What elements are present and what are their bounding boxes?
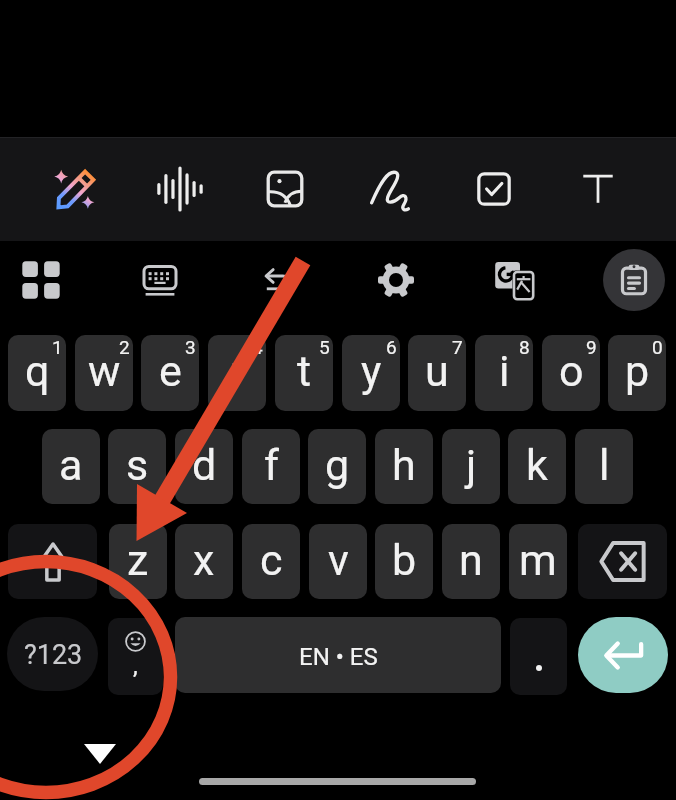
button[interactable]: Translate: [483, 249, 545, 311]
staticText: a: [59, 440, 83, 490]
button[interactable]: 6: [342, 335, 400, 411]
button[interactable]: Backspace: [578, 524, 667, 599]
button[interactable]: j: [442, 429, 500, 504]
button[interactable]: m: [509, 524, 567, 599]
button[interactable]: n: [442, 524, 500, 599]
button[interactable]: Undo: [247, 249, 309, 311]
staticText: ?123: [24, 639, 83, 671]
staticText: EN • ES: [299, 643, 378, 671]
staticText: q: [25, 346, 50, 396]
staticText: m: [519, 535, 557, 585]
button[interactable]: l: [575, 429, 633, 504]
staticText: n: [459, 535, 483, 585]
staticText: g: [325, 440, 350, 490]
button[interactable]: k: [508, 429, 566, 504]
staticText: 2: [119, 336, 130, 358]
staticText: 9: [586, 336, 597, 358]
button[interactable]: g: [308, 429, 366, 504]
staticText: c: [260, 535, 283, 585]
staticText: f: [264, 440, 279, 490]
button[interactable]: 5: [275, 335, 333, 411]
button[interactable]: Checkbox: [460, 155, 528, 223]
staticText: x: [193, 535, 215, 585]
staticText: w: [88, 346, 121, 396]
staticText: i: [499, 346, 510, 396]
button[interactable]: 9: [542, 335, 600, 411]
button[interactable]: d: [175, 429, 233, 504]
staticText: j: [466, 440, 477, 490]
button[interactable]: h: [375, 429, 433, 504]
button[interactable]: x: [175, 524, 233, 599]
button[interactable]: 8: [475, 335, 533, 411]
staticText: t: [297, 346, 312, 396]
button[interactable]: 1: [8, 335, 66, 411]
button[interactable]: Handwriting: [356, 155, 424, 223]
button[interactable]: Voice input: [146, 155, 214, 223]
staticText: y: [361, 346, 382, 396]
staticText: r: [230, 346, 245, 396]
staticText: 8: [519, 336, 530, 358]
button[interactable]: Keyboard layout: [129, 249, 191, 311]
staticText: o: [559, 346, 584, 396]
staticText: p: [625, 346, 650, 396]
staticText: k: [526, 440, 548, 490]
button[interactable]: Stickers: [251, 155, 319, 223]
button[interactable]: s: [108, 429, 166, 504]
button[interactable]: b: [375, 524, 433, 599]
button[interactable]: 4: [208, 335, 266, 411]
button[interactable]: 2: [75, 335, 133, 411]
button[interactable]: v: [309, 524, 367, 599]
button[interactable]: c: [242, 524, 300, 599]
staticText: e: [159, 346, 182, 396]
staticText: 6: [386, 336, 397, 358]
staticText: 0: [652, 336, 663, 358]
staticText: d: [192, 440, 217, 490]
button[interactable]: Text: [564, 155, 632, 223]
button[interactable]: Clipboard: [603, 249, 665, 311]
staticText: ,: [133, 652, 138, 680]
staticText: h: [392, 440, 416, 490]
button[interactable]: z: [109, 524, 167, 599]
staticText: 1: [52, 336, 63, 358]
button[interactable]: f: [242, 429, 300, 504]
button[interactable]: Emoji: [108, 618, 163, 695]
button[interactable]: Hide keyboard: [83, 738, 117, 770]
button[interactable]: 7: [408, 335, 466, 411]
staticText: u: [425, 346, 449, 396]
button[interactable]: Apps: [10, 249, 72, 311]
staticText: 5: [319, 336, 330, 358]
staticText: 4: [252, 336, 263, 358]
staticText: v: [328, 535, 349, 585]
button[interactable]: ?123: [7, 617, 98, 691]
staticText: 3: [185, 336, 196, 358]
button[interactable]: a: [42, 429, 100, 504]
button[interactable]: 3: [141, 335, 199, 411]
button[interactable]: Settings: [365, 249, 427, 311]
button[interactable]: 0: [608, 335, 666, 411]
button[interactable]: EN • ES: [175, 617, 501, 693]
staticText: l: [599, 440, 610, 490]
staticText: z: [127, 535, 149, 585]
button[interactable]: Period: [510, 618, 567, 695]
button[interactable]: Write with AI: [41, 155, 109, 223]
staticText: b: [392, 535, 417, 585]
button[interactable]: Shift: [8, 524, 97, 599]
button[interactable]: Enter: [578, 617, 668, 693]
staticText: 7: [452, 336, 463, 358]
staticText: s: [126, 440, 149, 490]
